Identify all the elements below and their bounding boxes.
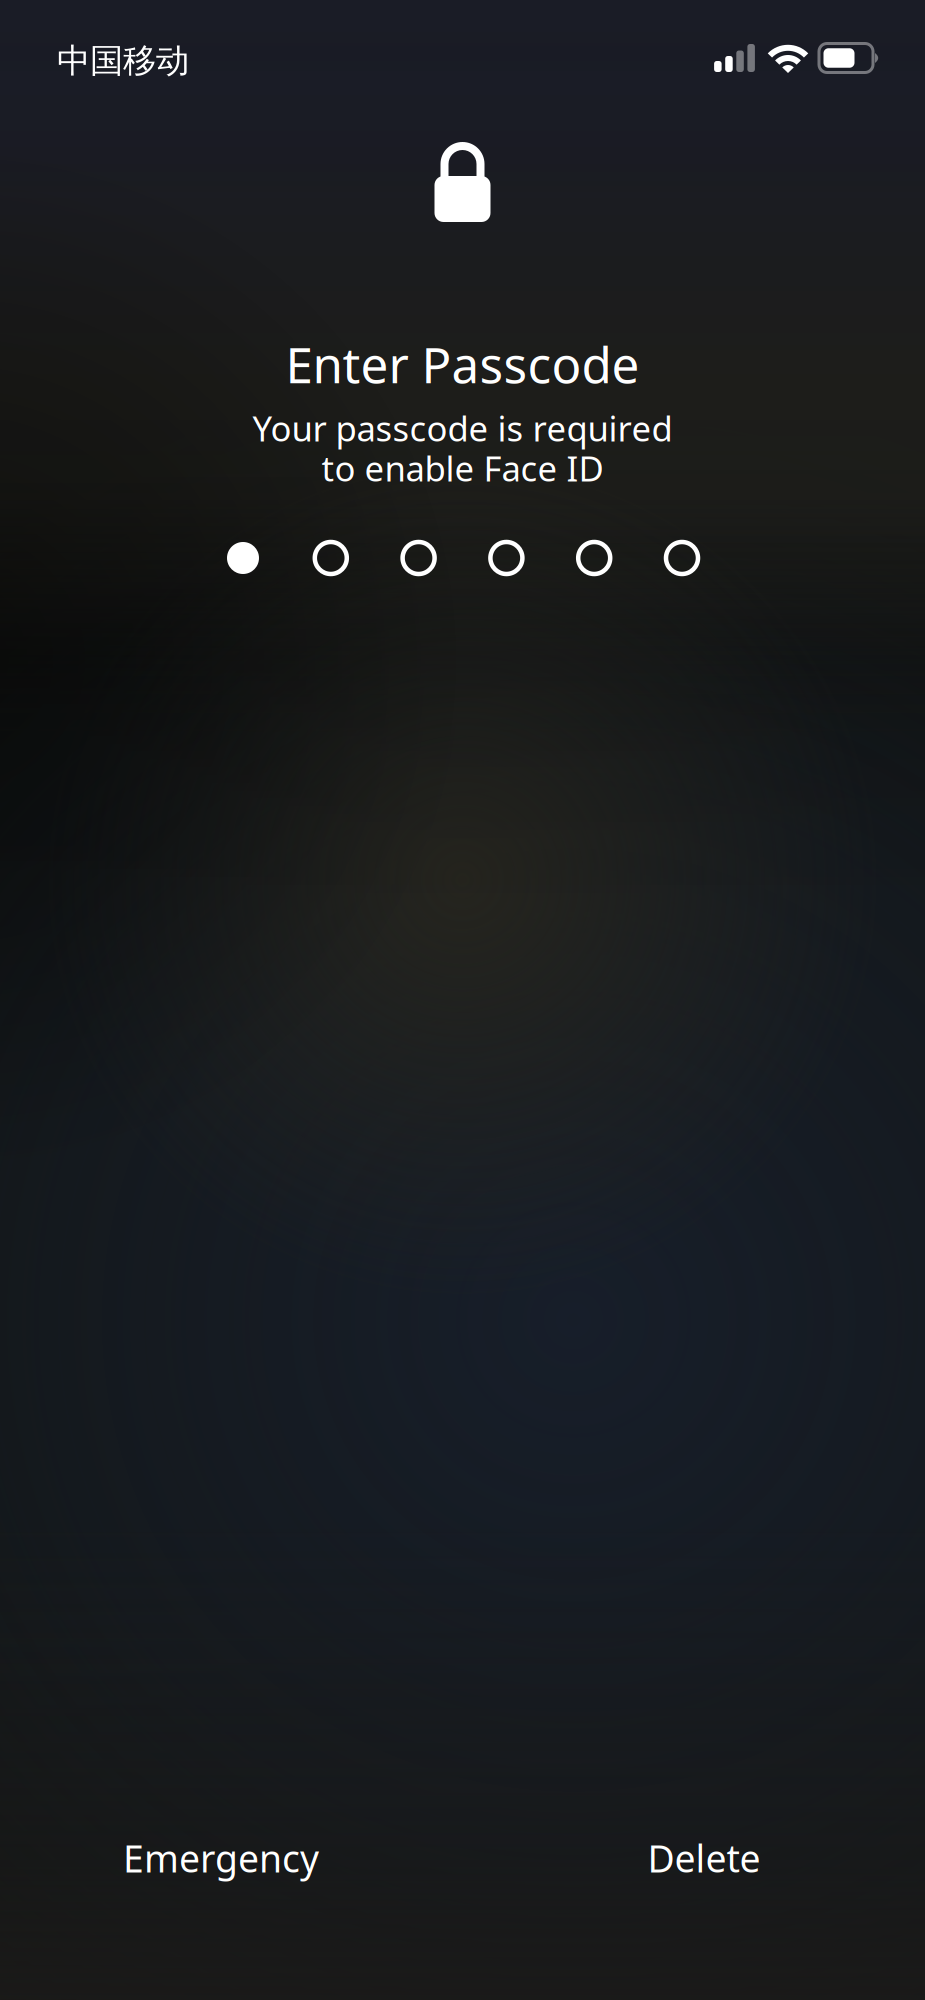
staticText: Delete (647, 1833, 760, 1883)
button[interactable]: Emergency (71, 1810, 371, 1906)
button[interactable]: Delete (554, 1810, 854, 1906)
staticText: Enter Passcode (285, 331, 639, 397)
staticText: Emergency (123, 1833, 319, 1883)
staticText: 中国移动 (57, 40, 189, 81)
staticText: to enable Face ID (321, 445, 603, 491)
staticText: Your passcode is required (252, 405, 672, 451)
